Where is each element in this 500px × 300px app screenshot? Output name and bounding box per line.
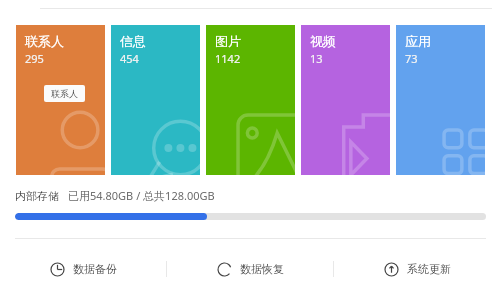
staticText: 1142 [215, 51, 241, 66]
staticText: 系统更新 [407, 262, 451, 276]
staticText: 数据备份 [73, 262, 117, 276]
button[interactable]: 应用 [396, 25, 485, 175]
staticText: 联系人 [25, 33, 64, 49]
staticText: 内部存储 [15, 189, 59, 203]
staticText: 应用 [405, 33, 431, 49]
staticText: 454 [120, 51, 139, 66]
button[interactable]: 视频 [301, 25, 390, 175]
staticText: 已用54.80GB / 总共128.00GB [68, 188, 215, 203]
button[interactable]: 系统更新 [334, 252, 500, 286]
button[interactable]: 数据恢复 [167, 252, 333, 286]
staticText: 图片 [215, 33, 241, 49]
staticText: 视频 [310, 33, 336, 49]
button[interactable]: 信息 [111, 25, 200, 175]
staticText: 73 [405, 51, 418, 66]
staticText: 数据恢复 [240, 262, 284, 276]
button[interactable]: 数据备份 [0, 252, 166, 286]
staticText: 联系人 [51, 88, 78, 99]
staticText: 295 [25, 51, 44, 66]
staticText: 13 [310, 51, 323, 66]
staticText: 信息 [120, 33, 146, 49]
button[interactable]: 联系人 [16, 25, 105, 175]
button[interactable]: 图片 [206, 25, 295, 175]
